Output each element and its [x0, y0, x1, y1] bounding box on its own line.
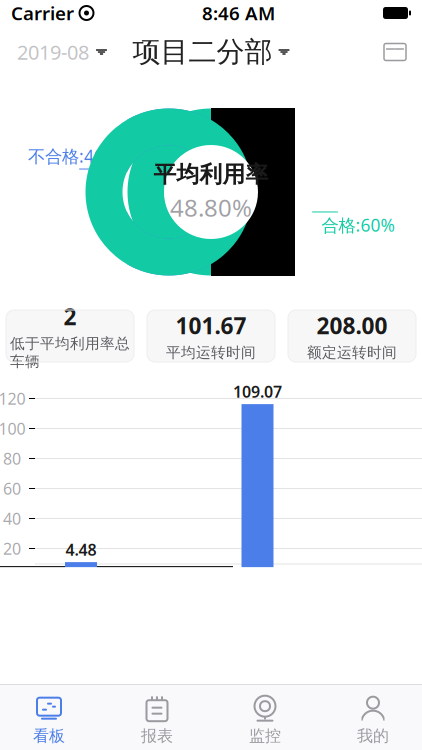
button[interactable]: 2 — [6, 310, 134, 362]
button[interactable]: Messages — [375, 34, 415, 70]
staticText: 项目二分部 — [132, 35, 272, 69]
staticText: Carrier — [11, 1, 74, 25]
staticText: 我的 — [357, 726, 389, 746]
button[interactable]: 我的 — [319, 694, 422, 746]
staticText: 监控 — [249, 726, 281, 746]
staticText: 额定运转时间 — [307, 343, 397, 361]
staticText: 低于平均利用率总车辆 — [10, 334, 130, 370]
staticText: 2019-08 — [17, 39, 89, 65]
staticText: 报表 — [141, 726, 173, 746]
staticText: 4.48 — [65, 539, 96, 560]
staticText: 208.00 — [316, 310, 387, 340]
staticText: 100 — [0, 418, 25, 439]
button[interactable]: 101.67 — [147, 310, 275, 362]
staticText: 2 — [63, 301, 76, 331]
staticText: 60 — [3, 478, 21, 499]
staticText: 48.80% — [170, 191, 252, 223]
staticText: 看板 — [33, 726, 65, 746]
button[interactable]: 208.00 — [288, 310, 416, 362]
staticText: 不合格:40% — [28, 144, 118, 167]
staticText: 80 — [3, 448, 21, 469]
staticText: 平均利用率 — [153, 161, 268, 188]
staticText: 101.67 — [175, 310, 246, 340]
staticText: 8:46 AM — [202, 1, 275, 25]
staticText: 20 — [3, 538, 21, 559]
button[interactable]: 监控 — [211, 694, 319, 746]
staticText: 120 — [0, 388, 25, 409]
staticText: 平均运转时间 — [166, 343, 256, 361]
button[interactable]: 2019-08 — [7, 31, 117, 73]
button[interactable]: 看板 — [0, 694, 103, 746]
button[interactable]: 报表 — [103, 694, 211, 746]
staticText: 40 — [3, 508, 21, 529]
staticText: 合格:60% — [321, 213, 394, 236]
staticText: 109.07 — [233, 381, 282, 402]
